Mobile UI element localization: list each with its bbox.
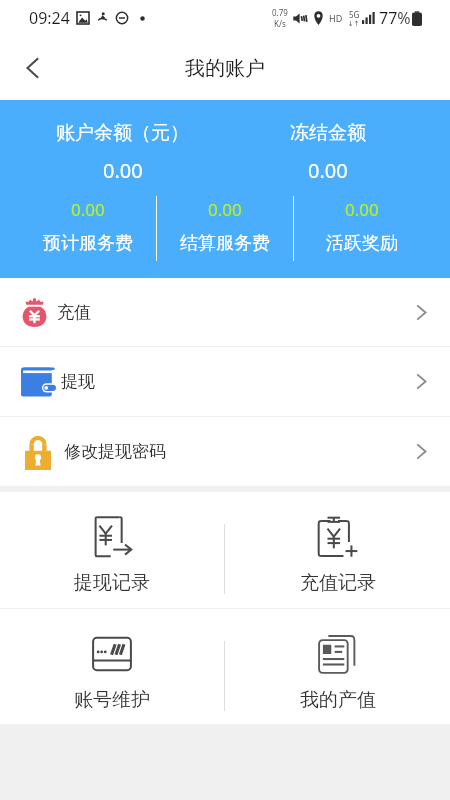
staticText: HD [329,12,343,24]
staticText: 充值记录 [300,571,376,595]
staticText: ↓↑ [348,20,360,28]
staticText: 预计服务费 [43,232,133,255]
staticText: 我的产值 [300,688,376,712]
staticText: 提现记录 [74,571,150,595]
button[interactable]: 充值 [0,278,450,346]
button[interactable]: 修改提现密码 [0,417,450,486]
button[interactable]: 我的产值 [225,609,450,724]
staticText: 0.00 [345,198,379,221]
staticText: 我的账户 [185,56,265,81]
staticText: 77% [379,7,411,29]
staticText: 0.79 [272,7,288,18]
button[interactable]: Back [6,42,58,94]
staticText: 充值 [57,302,91,323]
staticText: 冻结金额 [290,121,366,145]
staticText: 账号维护 [74,688,150,712]
staticText: 提现 [61,371,95,392]
staticText: 修改提现密码 [64,441,166,462]
staticText: K/s [274,18,286,29]
staticText: 0.00 [103,157,143,184]
staticText: 5G [349,9,360,20]
button[interactable]: 提现 [0,347,450,416]
staticText: 0.00 [208,198,242,221]
staticText: 结算服务费 [180,232,270,255]
staticText: 09:24 [29,7,70,29]
staticText: 0.00 [308,157,348,184]
button[interactable]: 账号维护 [0,609,224,724]
button[interactable]: 充值记录 [225,492,450,608]
button[interactable]: 提现记录 [0,492,224,608]
staticText: 0.00 [71,198,105,221]
staticText: 活跃奖励 [326,232,398,255]
staticText: 账户余额（元） [56,121,189,145]
